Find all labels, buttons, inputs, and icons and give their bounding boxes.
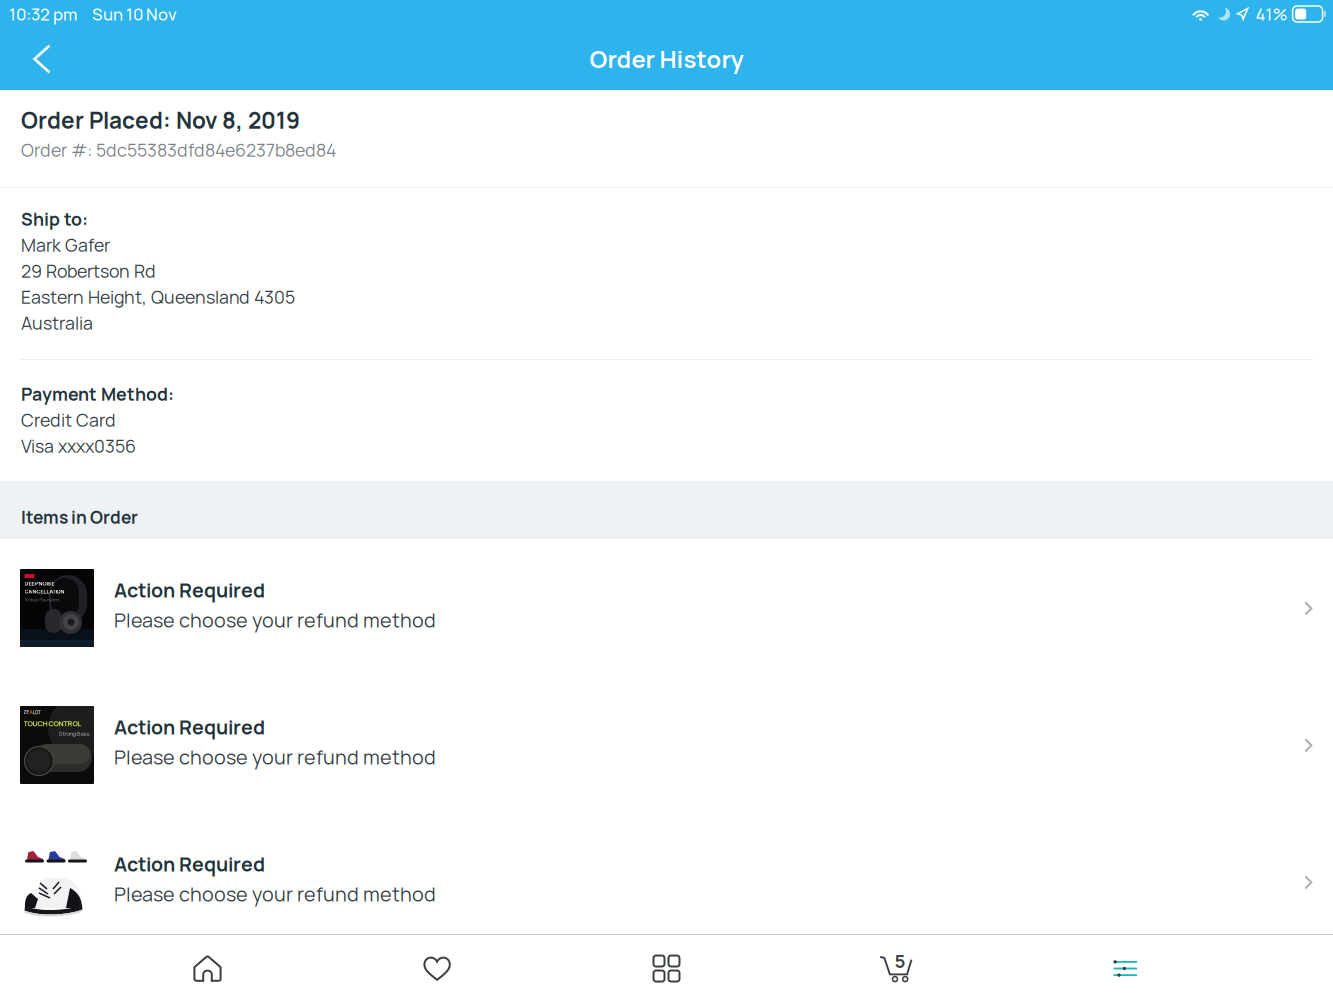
staticText: 5 (894, 948, 905, 973)
staticText: LOT (33, 709, 41, 716)
staticText: 41% (1256, 3, 1288, 25)
staticText: DEEP NOISE (24, 580, 54, 587)
button[interactable]: ZE (0, 676, 1333, 813)
staticText: 29 Robertson Rd (21, 259, 156, 283)
button[interactable]: Categories (552, 935, 781, 1000)
staticText: Credit Card (21, 408, 116, 432)
staticText: Eastern Height, Queensland 4305 (21, 285, 295, 309)
button[interactable]: Favourites (322, 935, 552, 1000)
staticText: CANCELLATION (24, 588, 64, 595)
staticText: Please choose your refund method (114, 743, 436, 770)
staticText: Action Required (114, 577, 265, 603)
staticText: Ship to: (21, 207, 88, 231)
staticText: 30 Hours Playing time (24, 598, 59, 602)
staticText: Items in Order (21, 505, 138, 529)
button[interactable]: Cart, 5 items (781, 935, 1011, 1000)
staticText: Mark Gafer (21, 233, 110, 257)
staticText: Sun 10 Nov (92, 3, 177, 25)
button[interactable]: Action Required (0, 813, 1333, 950)
staticText: Australia (21, 311, 93, 335)
staticText: Please choose your refund method (114, 880, 436, 907)
staticText: Order History (589, 43, 743, 75)
button[interactable]: Back (0, 28, 84, 90)
staticText: Strong Bass (58, 729, 89, 737)
staticText: Please choose your refund method (114, 606, 436, 633)
staticText: Order #: 5dc55383dfd84e6237b8ed84 (21, 138, 336, 162)
staticText: A (30, 709, 33, 716)
staticText: Visa xxxx0356 (21, 434, 136, 458)
staticText: Order Placed: Nov 8, 2019 (21, 105, 300, 135)
staticText: Payment Method: (21, 382, 174, 406)
staticText: Action Required (114, 851, 265, 877)
staticText: 10:32 pm (9, 3, 77, 25)
button[interactable]: DEEP NOISE (0, 539, 1333, 676)
button[interactable]: More (1011, 935, 1240, 1000)
staticText: TOUCH CONTROL (23, 719, 81, 728)
button[interactable]: Home (93, 935, 322, 1000)
staticText: ZE (23, 709, 29, 716)
staticText: Action Required (114, 714, 265, 740)
